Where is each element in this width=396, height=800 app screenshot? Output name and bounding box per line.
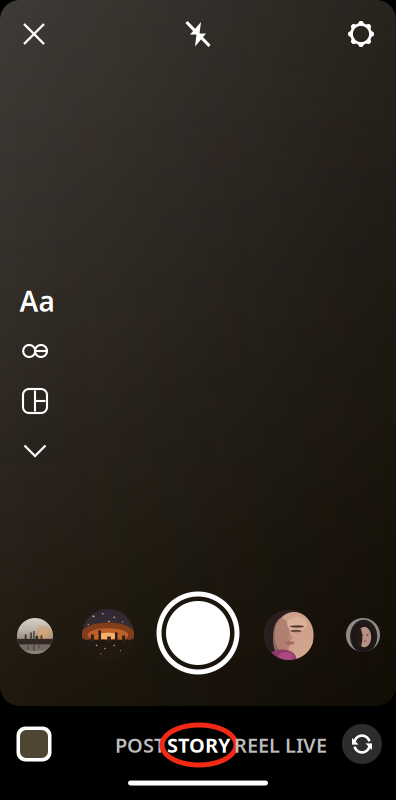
button[interactable]: Studio filter: [346, 618, 380, 652]
button[interactable]: Settings: [337, 10, 385, 58]
button[interactable]: Boomerang: [11, 329, 59, 373]
button[interactable]: Capture: [156, 591, 240, 675]
staticText: STORY: [167, 732, 231, 758]
button[interactable]: Portrait filter: [264, 610, 314, 660]
button[interactable]: STORY: [166, 725, 232, 765]
button[interactable]: More options: [11, 429, 59, 473]
button[interactable]: Sunset filter: [82, 609, 134, 661]
staticText: POST: [115, 732, 165, 758]
button[interactable]: Aa: [13, 279, 61, 323]
button[interactable]: Close: [10, 10, 58, 58]
staticText: LIVE: [285, 732, 327, 758]
button[interactable]: Winter filter: [17, 618, 53, 654]
button[interactable]: LIVE: [282, 725, 330, 765]
button[interactable]: Gallery: [12, 722, 56, 766]
staticText: REEL: [234, 732, 280, 758]
button[interactable]: POST: [114, 725, 166, 765]
staticText: Aa: [19, 282, 54, 320]
button[interactable]: Layout: [11, 379, 59, 423]
button[interactable]: Flip camera: [340, 722, 384, 766]
button[interactable]: Flash off: [174, 10, 222, 58]
button[interactable]: REEL: [232, 725, 282, 765]
